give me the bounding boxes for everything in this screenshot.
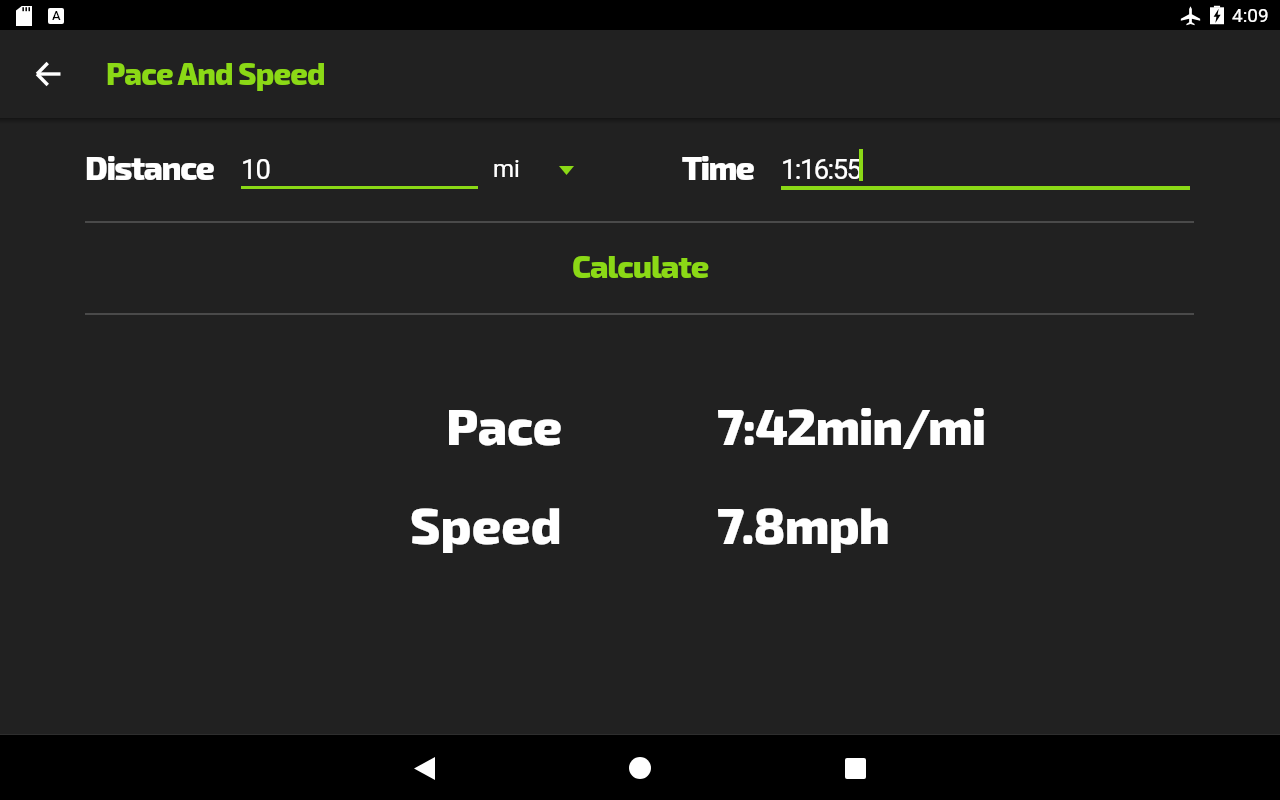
button[interactable]: Back [392,736,456,800]
staticText: 7:42min/mi [717,394,985,455]
staticText: 1:16:55 [781,154,861,186]
button[interactable]: 10 [241,148,478,220]
staticText: Calculate [572,246,708,284]
staticText: mi [493,155,520,183]
staticText: Distance [85,147,214,186]
staticText: 7.8mph [717,493,890,554]
button[interactable]: Home [608,736,672,800]
staticText: Time [682,147,754,186]
button[interactable]: mi [493,155,574,183]
button[interactable]: 1:16:55 [781,148,1190,220]
button[interactable]: Navigate up [24,50,72,98]
staticText: 10 [241,154,271,186]
button[interactable]: Calculate [0,223,1280,313]
staticText: Pace [446,394,562,455]
staticText: A [52,8,61,23]
staticText: Pace And Speed [106,55,325,91]
staticText: 4:09 [1232,4,1269,26]
button[interactable]: Recent apps [823,736,887,800]
staticText: Speed [410,493,562,554]
